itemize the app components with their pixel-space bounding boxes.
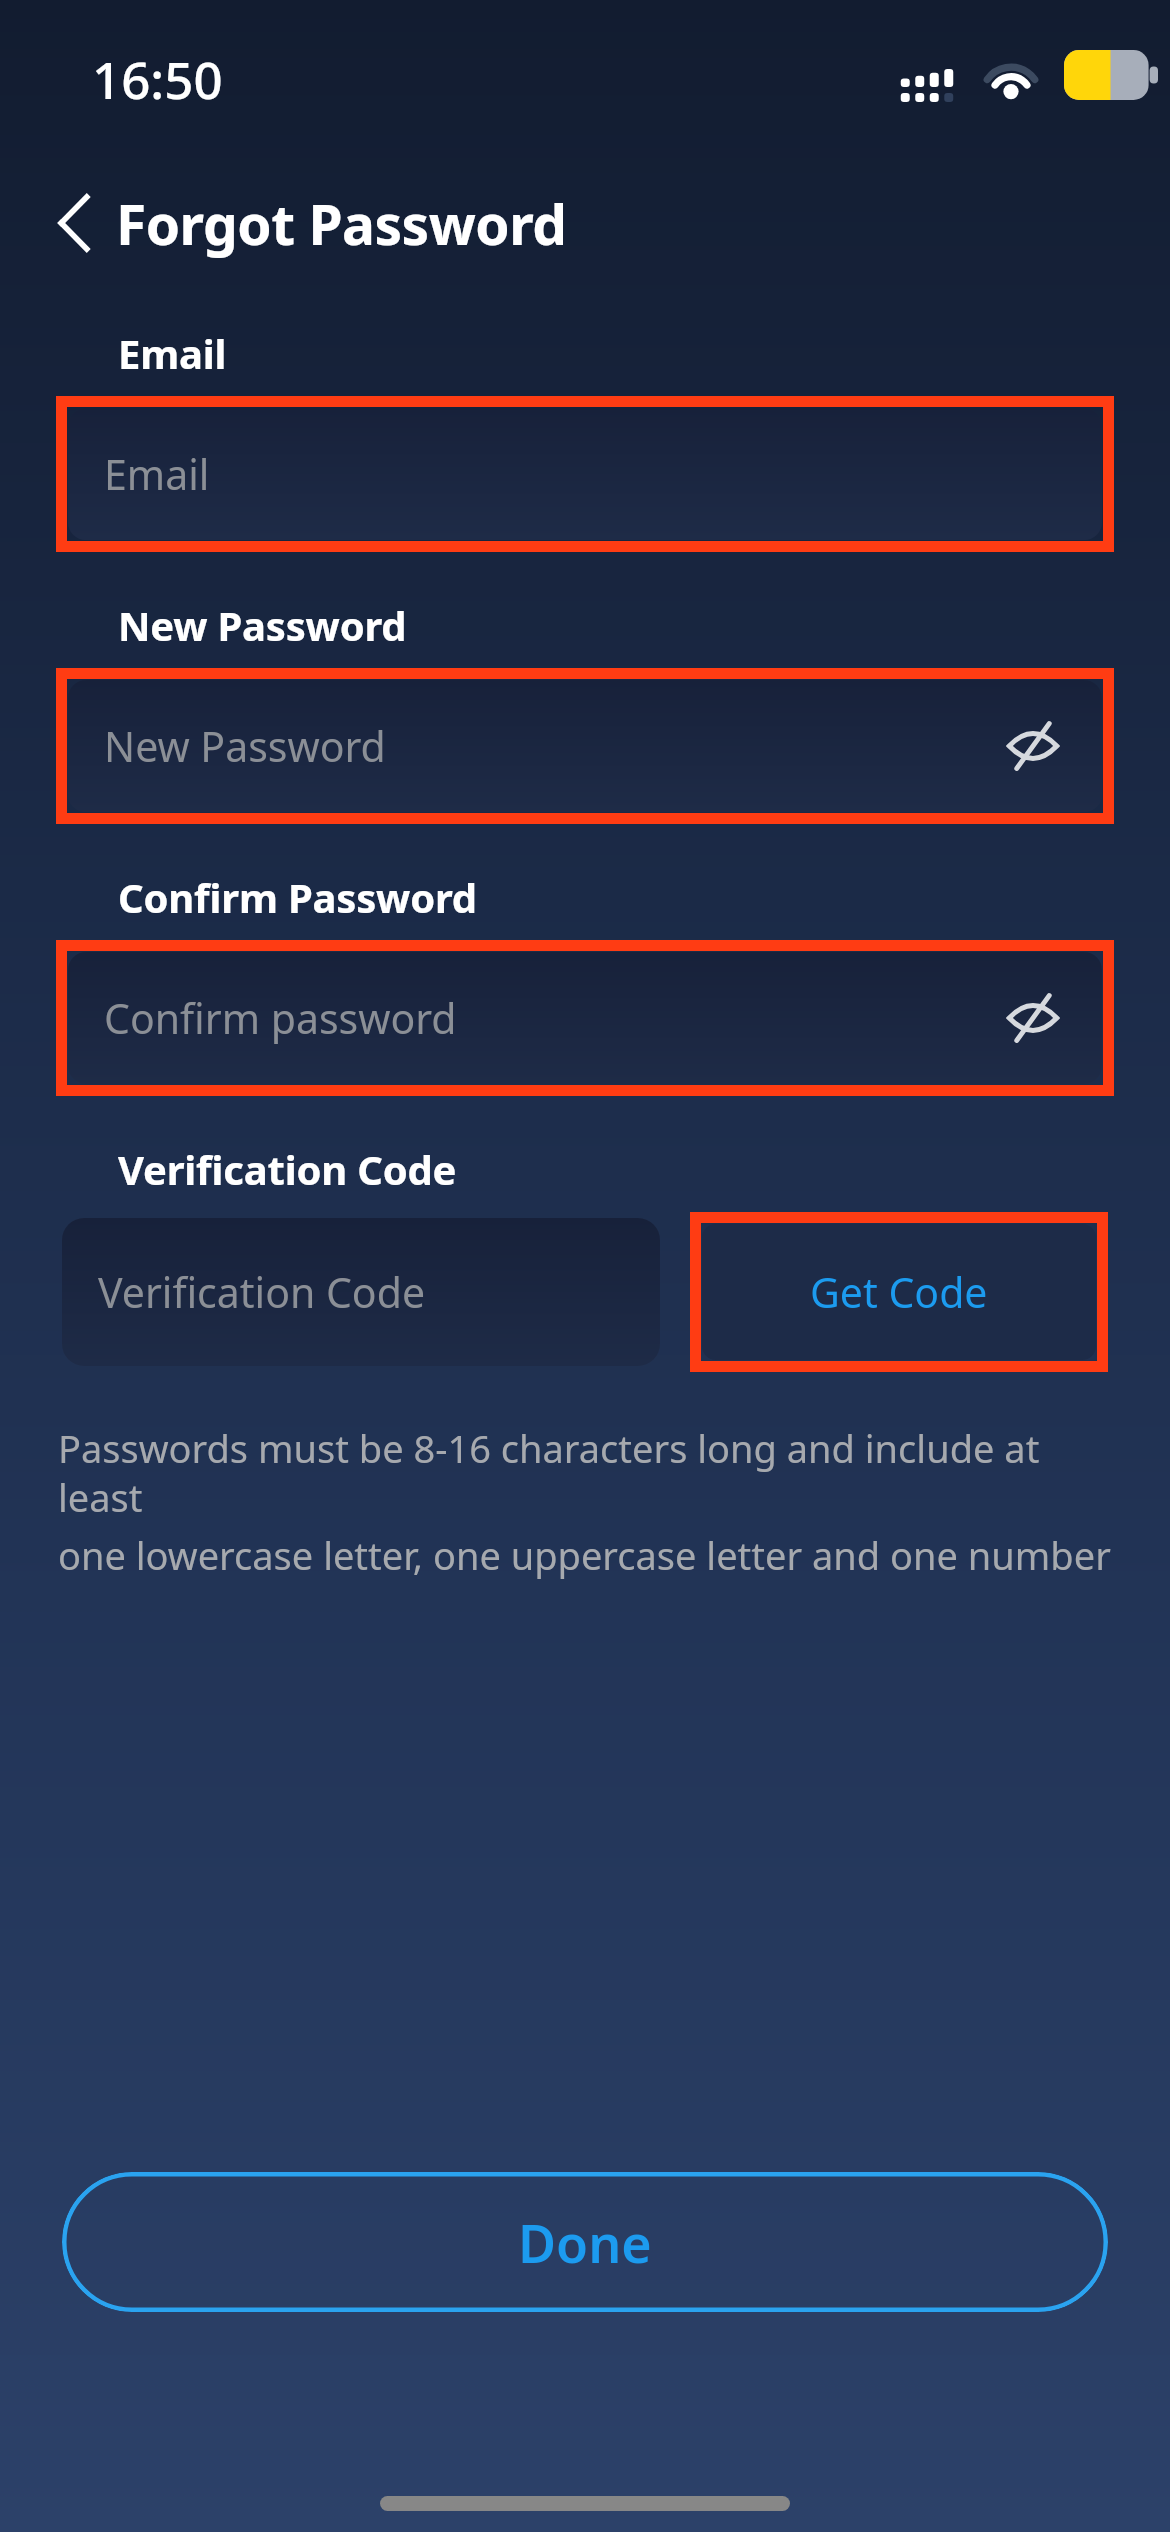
button[interactable]: Verification Code: [62, 1218, 660, 1366]
staticText: Email: [104, 446, 1066, 502]
button[interactable]: Back: [38, 187, 110, 259]
staticText: Forgot Password: [116, 186, 567, 261]
button[interactable]: Confirm password: [68, 952, 1102, 1084]
staticText: Done: [518, 2207, 652, 2278]
staticText: Get Code: [810, 1264, 988, 1320]
staticText: one lowercase letter, one uppercase lett…: [58, 1529, 1111, 1581]
staticText: Email: [118, 326, 227, 380]
button[interactable]: Toggle password visibility: [1000, 713, 1066, 779]
staticText: 16:50: [92, 44, 223, 113]
button[interactable]: Get Code: [702, 1224, 1096, 1360]
staticText: Confirm Password: [118, 870, 477, 924]
staticText: Passwords must be 8-16 characters long a…: [58, 1422, 1112, 1523]
staticText: New Password: [104, 718, 1000, 774]
button[interactable]: New Password: [68, 680, 1102, 812]
staticText: Verification Code: [118, 1142, 457, 1196]
button[interactable]: Done: [62, 2172, 1108, 2312]
staticText: New Password: [118, 598, 407, 652]
staticText: Confirm password: [104, 990, 1000, 1046]
button[interactable]: Toggle password visibility: [1000, 985, 1066, 1051]
staticText: Verification Code: [98, 1264, 426, 1320]
button[interactable]: Email: [68, 408, 1102, 540]
